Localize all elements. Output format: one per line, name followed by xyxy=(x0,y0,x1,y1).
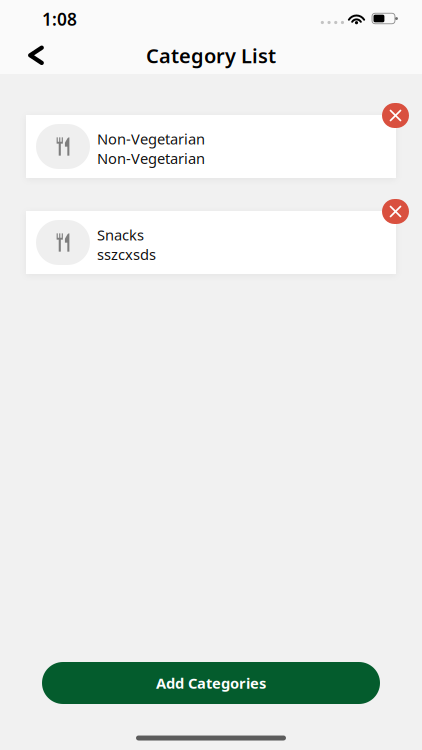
staticText: Non-Vegetarian xyxy=(97,129,205,148)
staticText: Category List xyxy=(146,42,276,69)
staticText: Non-Vegetarian xyxy=(97,148,205,168)
staticText: Snacks xyxy=(97,225,144,244)
staticText: Add Categories xyxy=(156,673,266,693)
button[interactable]: Snacks xyxy=(26,211,396,274)
staticText: 1:08 xyxy=(42,7,77,30)
button[interactable]: Non-Vegetarian xyxy=(26,115,396,178)
button[interactable]: Add Categories xyxy=(42,662,380,704)
button[interactable]: Delete Snacks xyxy=(382,199,409,224)
button[interactable]: Delete Non-Vegetarian xyxy=(382,103,409,128)
staticText: sszcxsds xyxy=(97,244,156,264)
button[interactable]: Back xyxy=(14,37,58,74)
